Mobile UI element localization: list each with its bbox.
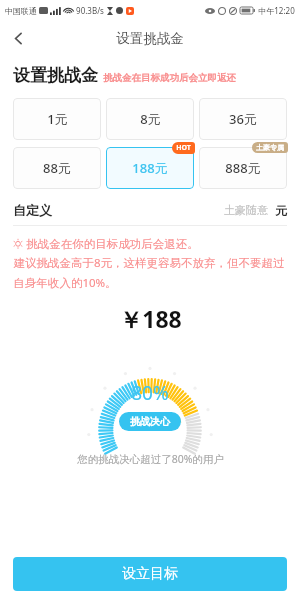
staticText: 8元 xyxy=(140,110,161,128)
staticText: 36元 xyxy=(229,110,257,128)
button[interactable]: 1元 xyxy=(13,98,101,140)
staticText: 挑战金在你的目标成功后会退还。 xyxy=(26,237,199,251)
button[interactable]: 设立目标 xyxy=(13,557,287,591)
staticText: ￥188 xyxy=(119,303,182,334)
button[interactable]: Back xyxy=(0,21,36,55)
staticText: 设置挑战金 xyxy=(116,30,184,47)
staticText: 中午12:20 xyxy=(258,5,295,16)
staticText: 元 xyxy=(275,203,287,218)
staticText: 80% xyxy=(131,380,169,406)
button[interactable]: 自定义 xyxy=(13,195,287,225)
staticText: 设置挑战金 xyxy=(13,65,98,86)
staticText: HOT xyxy=(176,143,191,153)
staticText: 设立目标 xyxy=(122,565,178,583)
staticText: 90.3B/s xyxy=(76,5,104,16)
staticText: 1元 xyxy=(47,110,68,128)
staticText: 挑战决心 xyxy=(130,415,170,428)
staticText: 中国联通 xyxy=(5,6,37,16)
button[interactable]: 188元 xyxy=(106,147,194,189)
button[interactable]: 888元 xyxy=(199,147,287,189)
staticText: 土豪专属 xyxy=(256,143,284,152)
staticText: 土豪随意 xyxy=(224,203,268,217)
staticText: 您的挑战决心超过了80%的用户 xyxy=(77,452,224,466)
button[interactable]: 挑战决心 xyxy=(119,412,181,431)
staticText: 888元 xyxy=(225,159,261,177)
staticText: 88元 xyxy=(43,159,71,177)
button[interactable]: 88元 xyxy=(13,147,101,189)
staticText: 建议挑战金高于8元，这样更容易不放弃，但不要超过 xyxy=(13,255,285,271)
staticText: 自身年收入的10%。 xyxy=(13,275,117,291)
staticText: 自定义 xyxy=(13,202,52,218)
button[interactable]: 36元 xyxy=(199,98,287,140)
button[interactable]: 8元 xyxy=(106,98,194,140)
staticText: 188元 xyxy=(132,159,168,177)
staticText: 挑战金在目标成功后会立即返还 xyxy=(103,72,236,84)
